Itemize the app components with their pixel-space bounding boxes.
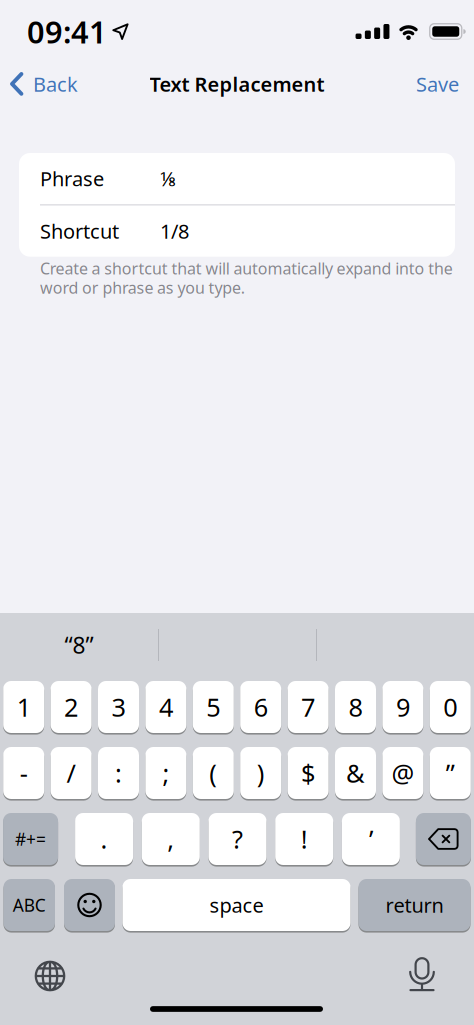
button[interactable]: ABC: [3, 879, 55, 931]
button[interactable]: ’: [342, 813, 400, 865]
button[interactable]: ”: [430, 747, 471, 799]
staticText: .: [101, 822, 108, 856]
button[interactable]: ,: [142, 813, 200, 865]
button[interactable]: @: [382, 747, 423, 799]
staticText: (: [209, 756, 217, 790]
button[interactable]: 4: [145, 681, 186, 733]
staticText: Phrase: [40, 165, 104, 192]
button[interactable]: 1: [3, 681, 44, 733]
button[interactable]: Save: [416, 71, 474, 97]
button[interactable]: Dictation: [404, 955, 440, 992]
button[interactable]: &: [335, 747, 376, 799]
button[interactable]: Next keyboard: [34, 960, 66, 992]
button[interactable]: -: [3, 747, 44, 799]
staticText: word or phrase as you type.: [40, 277, 245, 298]
button[interactable]: 7: [288, 681, 329, 733]
staticText: Text Replacement: [149, 71, 324, 97]
staticText: 1/8: [160, 218, 189, 244]
staticText: 3: [111, 690, 125, 724]
button[interactable]: 3: [98, 681, 139, 733]
button[interactable]: 0: [430, 681, 471, 733]
staticText: ,: [167, 822, 174, 856]
staticText: ⅛: [160, 165, 177, 192]
button[interactable]: $: [288, 747, 329, 799]
staticText: ): [257, 756, 265, 790]
staticText: Back: [33, 71, 78, 97]
staticText: 9: [396, 690, 410, 724]
staticText: @: [391, 756, 414, 790]
staticText: #+=: [15, 827, 46, 850]
button[interactable]: Emoji: [64, 879, 115, 931]
button[interactable]: :: [98, 747, 139, 799]
staticText: 1: [17, 690, 31, 724]
button[interactable]: 8: [335, 681, 376, 733]
staticText: space: [209, 892, 263, 918]
button[interactable]: “8”: [0, 613, 158, 677]
button[interactable]: !: [275, 813, 333, 865]
staticText: 2: [64, 690, 78, 724]
button[interactable]: #+=: [3, 813, 58, 865]
staticText: ?: [232, 822, 243, 856]
button[interactable]: Delete: [416, 813, 471, 865]
button[interactable]: ): [240, 747, 281, 799]
button[interactable]: space: [122, 879, 350, 931]
button[interactable]: Shortcut: [19, 205, 455, 257]
staticText: “8”: [64, 630, 93, 660]
button[interactable]: Back: [0, 71, 78, 97]
button[interactable]: 9: [382, 681, 423, 733]
staticText: -: [20, 756, 28, 790]
button[interactable]: .: [75, 813, 133, 865]
staticText: return: [385, 892, 443, 918]
button[interactable]: Phrase: [19, 153, 455, 204]
button[interactable]: 5: [193, 681, 234, 733]
staticText: 4: [159, 690, 173, 724]
button[interactable]: return: [358, 879, 470, 931]
button[interactable]: 2: [51, 681, 92, 733]
staticText: 0: [443, 690, 457, 724]
staticText: :: [115, 756, 122, 790]
staticText: !: [301, 822, 308, 856]
staticText: &: [346, 756, 365, 790]
staticText: 5: [206, 690, 220, 724]
staticText: 09:41: [27, 11, 107, 52]
button[interactable]: /: [51, 747, 92, 799]
staticText: 8: [348, 690, 362, 724]
button[interactable]: (: [193, 747, 234, 799]
button[interactable]: ?: [208, 813, 266, 865]
button[interactable]: 6: [240, 681, 281, 733]
staticText: Shortcut: [40, 218, 119, 244]
staticText: 7: [301, 690, 315, 724]
staticText: ;: [162, 756, 169, 790]
staticText: Save: [416, 71, 459, 97]
staticText: ABC: [13, 893, 46, 916]
staticText: ’: [369, 822, 373, 856]
staticText: $: [301, 756, 315, 790]
button[interactable]: ;: [145, 747, 186, 799]
staticText: ”: [446, 756, 455, 790]
staticText: Create a shortcut that will automaticall…: [40, 258, 453, 279]
staticText: 6: [254, 690, 268, 724]
staticText: /: [67, 756, 76, 790]
